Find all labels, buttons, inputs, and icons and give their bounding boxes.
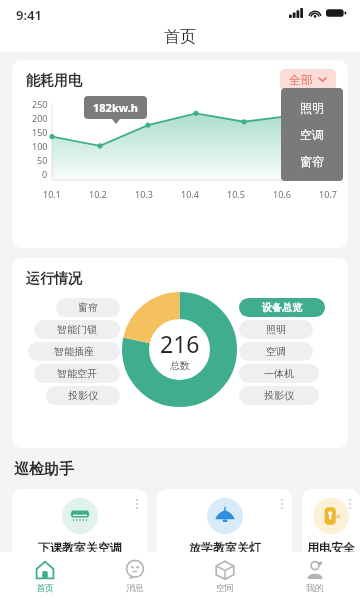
button[interactable]: 首页 bbox=[0, 552, 90, 600]
staticText: 9:41 bbox=[16, 6, 42, 24]
staticText: 智能空开 bbox=[57, 367, 97, 380]
staticText: 0 bbox=[42, 168, 48, 180]
button[interactable]: 用电安全 bbox=[302, 489, 360, 567]
staticText: 智能门锁 bbox=[57, 323, 97, 336]
staticText: 能耗用电 bbox=[26, 72, 82, 90]
button[interactable]: 设备总览 bbox=[239, 298, 325, 317]
staticText: 100 bbox=[32, 140, 48, 152]
staticText: 消息 bbox=[126, 582, 144, 593]
staticText: 照明 bbox=[300, 100, 324, 115]
staticText: 巡检助手 bbox=[14, 460, 74, 479]
button[interactable]: 放学教室关灯 bbox=[157, 489, 292, 567]
button[interactable]: 投影仪 bbox=[46, 386, 120, 405]
button[interactable]: 智能插座 bbox=[28, 342, 120, 361]
staticText: 200 bbox=[32, 112, 48, 124]
staticText: 投影仪 bbox=[264, 389, 294, 402]
staticText: 放学教室关灯 bbox=[189, 540, 261, 555]
staticText: 50 bbox=[37, 154, 48, 166]
staticText: 全部 bbox=[289, 72, 313, 87]
button[interactable]: More options bbox=[136, 499, 138, 509]
staticText: 182kw.h bbox=[93, 100, 138, 115]
staticText: 投影仪 bbox=[68, 389, 98, 402]
staticText: 窗帘 bbox=[300, 154, 324, 169]
staticText: 用电安全 bbox=[307, 540, 355, 555]
staticText: 智能插座 bbox=[54, 345, 94, 358]
button[interactable]: More options bbox=[281, 499, 283, 509]
staticText: 总数 bbox=[170, 359, 190, 372]
staticText: 10.6 bbox=[270, 188, 294, 200]
staticText: 设备总览 bbox=[262, 301, 302, 314]
button[interactable]: 一体机 bbox=[239, 364, 319, 383]
staticText: 250 bbox=[32, 98, 48, 110]
staticText: 216 bbox=[160, 328, 200, 359]
staticText: 首页 bbox=[164, 27, 196, 47]
button[interactable]: 智能门锁 bbox=[34, 320, 120, 339]
staticText: 运行情况 bbox=[26, 270, 82, 288]
staticText: 首页 bbox=[36, 582, 54, 593]
staticText: 空间 bbox=[216, 582, 234, 593]
staticText: 10.5 bbox=[224, 188, 248, 200]
staticText: 10.4 bbox=[178, 188, 202, 200]
button[interactable]: 智能空开 bbox=[34, 364, 120, 383]
button[interactable]: 空调 bbox=[239, 342, 313, 361]
button[interactable]: 照明 bbox=[281, 94, 343, 121]
staticText: 窗帘 bbox=[78, 301, 98, 314]
staticText: 10.1 bbox=[40, 188, 64, 200]
button[interactable]: 窗帘 bbox=[281, 148, 343, 175]
button[interactable]: 全部 bbox=[280, 69, 336, 90]
staticText: 10.2 bbox=[86, 188, 110, 200]
button[interactable]: 我的 bbox=[270, 552, 360, 600]
staticText: 空调 bbox=[266, 345, 286, 358]
button[interactable]: 空间 bbox=[180, 552, 270, 600]
staticText: 10.3 bbox=[132, 188, 156, 200]
button[interactable]: 窗帘 bbox=[56, 298, 120, 317]
staticText: 150 bbox=[32, 126, 48, 138]
button[interactable]: 空调 bbox=[281, 121, 343, 148]
button[interactable]: 投影仪 bbox=[239, 386, 319, 405]
staticText: 照明 bbox=[266, 323, 286, 336]
button[interactable]: 消息 bbox=[90, 552, 180, 600]
button[interactable]: 照明 bbox=[239, 320, 313, 339]
staticText: 我的 bbox=[306, 582, 324, 593]
staticText: 一体机 bbox=[264, 367, 294, 380]
staticText: 下课教室关空调 bbox=[38, 540, 122, 555]
button[interactable]: 下课教室关空调 bbox=[12, 489, 147, 567]
staticText: 10.7 bbox=[316, 188, 340, 200]
button[interactable]: More options bbox=[349, 499, 351, 509]
staticText: 空调 bbox=[300, 127, 324, 142]
